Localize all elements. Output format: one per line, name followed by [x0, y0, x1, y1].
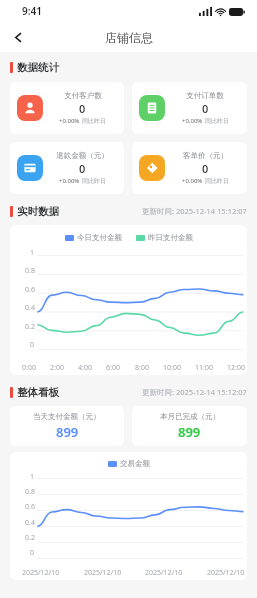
button[interactable]: 本月已完成（元）	[132, 406, 247, 446]
staticText: 当天支付金额（元）	[33, 412, 101, 421]
staticText: 退款金额（元）	[56, 151, 109, 160]
staticText: 1	[30, 472, 35, 482]
staticText: 同比昨日	[205, 177, 229, 185]
staticText: 0.8	[25, 266, 35, 276]
staticText: 2025/12/10	[84, 568, 122, 578]
staticText: +0.00%	[59, 177, 80, 185]
staticText: 0	[30, 548, 35, 558]
staticText: 数据统计	[17, 61, 59, 74]
button[interactable]: 当天支付金额（元）	[10, 406, 124, 446]
staticText: 9:41	[22, 4, 42, 18]
staticText: 更新时间: 2025-12-14 15:12:07	[142, 387, 247, 397]
staticText: 今日支付金额	[77, 233, 122, 242]
staticText: 实时数据	[17, 205, 59, 218]
staticText: 同比昨日	[82, 117, 106, 125]
staticText: 0	[202, 101, 209, 116]
staticText: +0.00%	[182, 117, 203, 125]
staticText: 支付订单数	[186, 91, 224, 100]
staticText: 2025/12/10	[207, 568, 245, 578]
staticText: 2:00	[50, 363, 64, 373]
staticText: 10:00	[163, 363, 181, 373]
staticText: 支付客户数	[64, 91, 102, 100]
staticText: 8:00	[135, 363, 149, 373]
staticText: 本月已完成（元）	[160, 412, 220, 421]
staticText: 0.2	[25, 322, 35, 332]
staticText: 整体看板	[17, 386, 59, 399]
staticText: 12:00	[227, 363, 245, 373]
staticText: 6:00	[106, 363, 120, 373]
staticText: 0.4	[25, 518, 35, 528]
staticText: 11:00	[195, 363, 213, 373]
staticText: 0.4	[25, 303, 35, 313]
staticText: 0.6	[25, 285, 35, 295]
button[interactable]: 支付客户数	[10, 82, 124, 134]
staticText: 4:00	[78, 363, 92, 373]
staticText: 2025/12/10	[145, 568, 183, 578]
staticText: 客单价（元）	[183, 151, 228, 160]
button[interactable]: Back	[4, 23, 32, 51]
staticText: 同比昨日	[205, 117, 229, 125]
staticText: 0:00	[22, 363, 36, 373]
staticText: 0	[30, 340, 35, 350]
staticText: 0	[202, 161, 209, 176]
staticText: 2025/12/10	[22, 568, 60, 578]
staticText: 更新时间: 2025-12-14 15:12:07	[142, 206, 247, 216]
staticText: 0	[79, 161, 86, 176]
staticText: 899	[56, 423, 79, 441]
staticText: +0.00%	[182, 177, 203, 185]
staticText: 0.2	[25, 533, 35, 543]
staticText: 0	[79, 101, 86, 116]
staticText: 昨日支付金额	[148, 233, 193, 242]
staticText: 店铺信息	[105, 30, 153, 45]
staticText: 0.8	[25, 487, 35, 497]
button[interactable]: 客单价（元）	[132, 142, 247, 194]
button[interactable]: 退款金额（元）	[10, 142, 124, 194]
staticText: 交易金额	[120, 459, 150, 468]
staticText: +0.00%	[59, 117, 80, 125]
staticText: 1	[30, 248, 35, 258]
staticText: 同比昨日	[82, 177, 106, 185]
staticText: 899	[178, 423, 201, 441]
button[interactable]: 支付订单数	[132, 82, 247, 134]
staticText: 0.6	[25, 502, 35, 512]
